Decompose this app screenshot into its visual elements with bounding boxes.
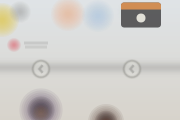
button[interactable]: Previous [121,58,143,80]
button[interactable]: Photo [121,2,161,27]
button[interactable]: Previous [30,58,52,80]
